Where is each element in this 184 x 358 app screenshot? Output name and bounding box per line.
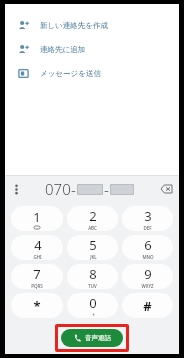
button[interactable]: 8 — [67, 264, 118, 289]
staticText: 6 — [144, 236, 152, 254]
staticText: - — [104, 179, 109, 199]
staticText: WXYZ — [141, 283, 154, 289]
button[interactable]: 1 — [11, 206, 63, 231]
button[interactable]: # — [122, 293, 173, 318]
staticText: 音声通話 — [85, 334, 111, 342]
button[interactable]: 0 — [67, 293, 118, 318]
staticText: 新しい連絡先を作成 — [40, 21, 109, 30]
staticText: - — [71, 179, 76, 199]
staticText: 連絡先に追加 — [40, 45, 86, 54]
staticText: PQRS — [31, 283, 43, 289]
button[interactable]: 新しい連絡先を作成 — [5, 13, 179, 37]
button[interactable]: 2 — [67, 206, 118, 231]
button[interactable]: More options — [5, 176, 27, 202]
button[interactable]: Backspace — [153, 176, 179, 202]
button[interactable]: 3 — [122, 206, 173, 231]
button[interactable]: 音声通話 — [61, 329, 123, 347]
button[interactable]: メッセージを送信 — [5, 61, 179, 85]
staticText: 7 — [33, 265, 41, 283]
staticText: GHI — [33, 254, 42, 260]
staticText: 3 — [144, 207, 152, 225]
staticText: 5 — [89, 236, 97, 254]
staticText: 4 — [34, 236, 42, 254]
button[interactable]: 連絡先に追加 — [5, 37, 179, 61]
staticText: * — [33, 297, 41, 315]
staticText: # — [143, 297, 152, 315]
staticText: ABC — [88, 225, 97, 231]
staticText: DEF — [143, 225, 152, 231]
staticText: JKL — [90, 254, 97, 260]
button[interactable]: 5 — [67, 235, 118, 260]
staticText: 0 — [89, 294, 97, 312]
staticText: MNO — [142, 254, 154, 260]
staticText: TUV — [88, 283, 97, 289]
button[interactable]: 4 — [11, 235, 63, 260]
staticText: メッセージを送信 — [40, 69, 101, 78]
staticText: 070 — [45, 179, 71, 199]
staticText: + — [92, 312, 95, 318]
button[interactable]: 6 — [122, 235, 173, 260]
staticText: 9 — [144, 265, 152, 283]
button[interactable]: * — [11, 293, 63, 318]
staticText: 2 — [89, 207, 97, 225]
button[interactable]: 9 — [122, 264, 173, 289]
button[interactable]: 7 — [11, 264, 63, 289]
staticText: 8 — [89, 265, 97, 283]
staticText: 1 — [33, 208, 41, 226]
